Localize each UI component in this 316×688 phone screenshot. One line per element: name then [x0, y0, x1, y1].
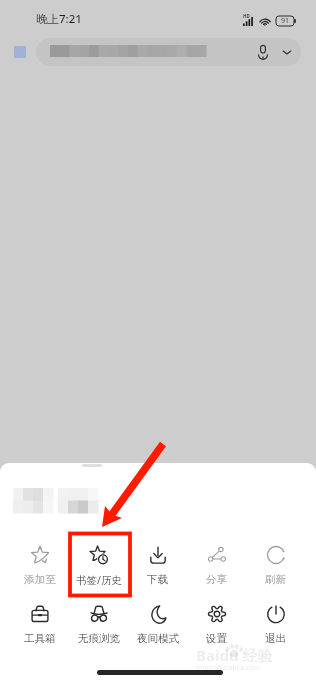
staticText: 书签/历史 — [76, 573, 122, 587]
staticText: 91 — [281, 16, 290, 26]
staticText: 设置 — [206, 632, 227, 645]
staticText: 无痕浏览 — [78, 632, 120, 645]
staticText: 下载 — [147, 573, 168, 586]
staticText: 工具箱 — [24, 632, 56, 645]
staticText: 分享 — [206, 573, 227, 586]
staticText: HD — [243, 13, 250, 19]
button[interactable]: 工具箱 — [11, 598, 69, 652]
button[interactable]: 夜间模式 — [128, 598, 187, 652]
button[interactable]: 无痕浏览 — [69, 598, 128, 652]
button[interactable]: Voice search — [36, 38, 301, 66]
button[interactable]: Voice search — [258, 45, 268, 59]
staticText: 刷新 — [265, 573, 286, 586]
staticText: 晚上7:21 — [36, 11, 82, 27]
staticText: Baidu 经验 — [196, 645, 273, 665]
button[interactable]: 设置 — [187, 598, 246, 652]
staticText: 退出 — [265, 632, 286, 645]
button[interactable]: 下载 — [128, 539, 187, 593]
button[interactable]: 分享 — [187, 539, 246, 593]
button[interactable]: More options — [282, 49, 292, 56]
staticText: 添加至 — [24, 573, 56, 586]
button[interactable]: 刷新 — [246, 539, 305, 593]
button[interactable]: 退出 — [246, 598, 305, 652]
button[interactable]: 添加至 — [11, 539, 69, 593]
staticText: 夜间模式 — [137, 632, 179, 645]
button[interactable]: 书签/历史 — [69, 539, 128, 593]
staticText: jingyan.baidu.com — [196, 663, 261, 673]
